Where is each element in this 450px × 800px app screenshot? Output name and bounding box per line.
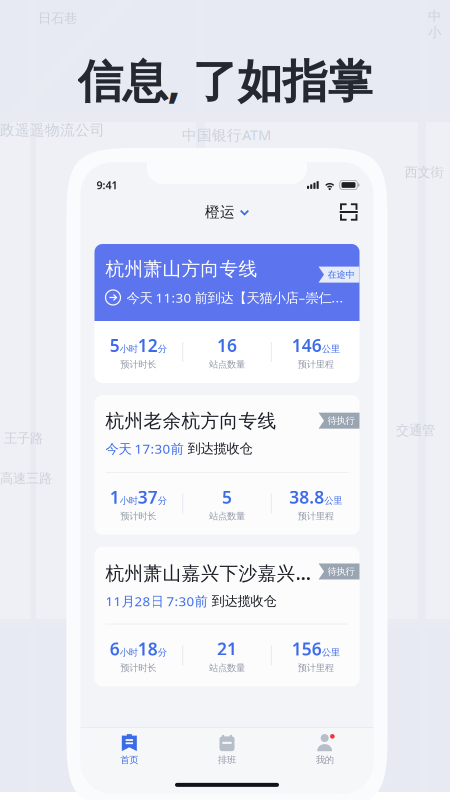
- staticText: 杭州萧山嘉兴下沙嘉兴…: [105, 560, 311, 585]
- staticText: 预计时长: [120, 662, 156, 674]
- staticText: 排班: [218, 754, 236, 766]
- staticText: 小时: [120, 495, 138, 506]
- staticText: 21: [217, 637, 237, 660]
- staticText: 分: [158, 647, 167, 658]
- staticText: 小时: [120, 647, 138, 658]
- staticText: 公里: [322, 343, 340, 355]
- staticText: 5: [222, 485, 232, 508]
- staticText: 到达揽收仓: [187, 440, 252, 457]
- staticText: 分: [158, 495, 167, 506]
- staticText: 12: [138, 334, 158, 357]
- button[interactable]: 橙运: [195, 196, 259, 228]
- staticText: 18: [138, 637, 158, 660]
- staticText: 预计里程: [298, 359, 334, 370]
- staticText: 西文街: [404, 164, 443, 180]
- staticText: 11月28日 7:30前: [105, 592, 207, 610]
- staticText: 公里: [322, 647, 340, 658]
- staticText: 王子路: [4, 430, 43, 446]
- staticText: 6: [110, 637, 120, 660]
- staticText: 到达揽收仓: [211, 593, 276, 609]
- staticText: 预计时长: [120, 359, 156, 370]
- staticText: 1: [110, 485, 120, 508]
- staticText: 今天 11:30 前到达【天猫小店–崇仁路…: [126, 288, 351, 306]
- button[interactable]: 首页: [80, 731, 178, 769]
- staticText: 杭州老余杭方向专线: [105, 410, 276, 433]
- staticText: 我的: [316, 754, 334, 766]
- staticText: 9:41: [96, 178, 117, 192]
- staticText: 杭州萧山方向专线: [105, 258, 257, 280]
- staticText: 156: [292, 637, 322, 660]
- button[interactable]: 排班: [178, 731, 276, 769]
- staticText: 16: [217, 334, 237, 357]
- staticText: 预计里程: [298, 510, 334, 522]
- staticText: 146: [292, 334, 322, 357]
- button[interactable]: 杭州萧山方向专线: [94, 244, 359, 383]
- staticText: 分: [158, 343, 167, 355]
- staticText: 37: [138, 485, 158, 508]
- staticText: 交通管: [396, 422, 435, 438]
- staticText: 中: [428, 8, 441, 24]
- staticText: 政遥遥物流公司: [0, 121, 105, 139]
- staticText: 日石巷: [38, 10, 77, 26]
- staticText: 小时: [120, 343, 138, 355]
- staticText: 橙运: [205, 203, 235, 221]
- staticText: 中国银行ATM: [182, 125, 271, 144]
- staticText: 今天 17:30前: [105, 440, 183, 457]
- staticText: 预计时长: [120, 510, 156, 522]
- button[interactable]: 扫一扫: [334, 197, 363, 227]
- staticText: 5: [110, 334, 120, 357]
- staticText: 首页: [120, 754, 138, 766]
- staticText: 高速三路: [0, 470, 52, 486]
- staticText: 公里: [324, 495, 342, 506]
- staticText: 预计里程: [298, 662, 334, 674]
- staticText: 信息, 了如指掌: [77, 50, 372, 110]
- staticText: 待执行: [327, 566, 354, 577]
- staticText: 站点数量: [209, 510, 245, 522]
- staticText: 站点数量: [209, 359, 245, 370]
- staticText: 在途中: [327, 269, 354, 280]
- staticText: 38.8: [289, 485, 324, 508]
- button[interactable]: 杭州老余杭方向专线: [94, 395, 359, 535]
- staticText: 站点数量: [209, 662, 245, 674]
- button[interactable]: 我的: [276, 731, 373, 769]
- staticText: 待执行: [327, 415, 354, 426]
- staticText: 小: [428, 24, 441, 40]
- button[interactable]: 杭州萧山嘉兴下沙嘉兴…: [94, 547, 359, 686]
